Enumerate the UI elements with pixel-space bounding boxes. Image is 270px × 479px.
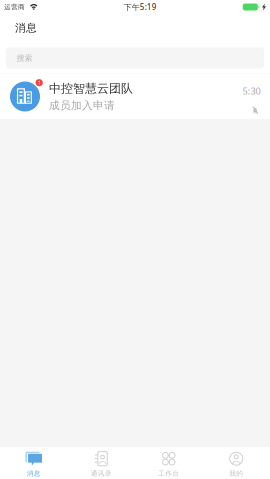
staticText: 消息 [27, 469, 41, 478]
button[interactable]: 搜索 [6, 47, 264, 68]
button[interactable]: 工作台 [135, 447, 202, 479]
staticText: 1 [38, 79, 41, 86]
staticText: 成员加入申请 [49, 99, 115, 112]
button[interactable]: 我的 [202, 447, 270, 479]
staticText: 我的 [229, 469, 243, 478]
button[interactable]: 消息 [0, 447, 67, 479]
staticText: 下午5:19 [124, 2, 157, 12]
staticText: 5:30 [242, 85, 260, 97]
staticText: 中控智慧云团队 [49, 81, 133, 96]
button[interactable]: 通讯录 [67, 447, 135, 479]
staticText: 搜索 [16, 53, 32, 63]
staticText: 运营商 [4, 3, 25, 11]
button[interactable]: 1 [0, 74, 270, 119]
staticText: 工作台 [158, 469, 179, 478]
staticText: 通讯录 [91, 469, 112, 478]
staticText: 消息 [15, 21, 37, 34]
